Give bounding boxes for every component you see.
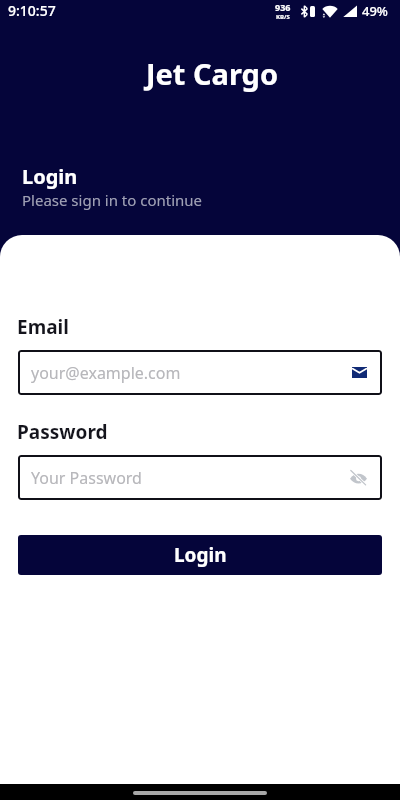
button[interactable]: Show password bbox=[350, 470, 367, 485]
staticText: 49% bbox=[362, 2, 388, 20]
staticText: Password bbox=[17, 419, 108, 445]
other: Email bbox=[352, 367, 367, 378]
staticText: Login bbox=[174, 542, 227, 568]
staticText: Email bbox=[17, 314, 69, 340]
staticText: your@example.com bbox=[31, 362, 181, 384]
other: Show password bbox=[350, 470, 367, 485]
staticText: 9:10:57 bbox=[8, 1, 56, 20]
staticText: Login bbox=[22, 163, 78, 190]
button[interactable]: Password field bbox=[18, 455, 382, 500]
button[interactable]: Email address field bbox=[18, 350, 382, 395]
button[interactable]: Email bbox=[352, 367, 367, 378]
staticText: Your Password bbox=[31, 467, 142, 489]
staticText: Jet Cargo bbox=[12, 54, 400, 93]
button[interactable]: Login bbox=[18, 535, 382, 575]
staticText: Please sign in to continue bbox=[22, 190, 203, 210]
staticText: 936 bbox=[275, 1, 291, 13]
staticText: KB/S bbox=[276, 13, 290, 21]
